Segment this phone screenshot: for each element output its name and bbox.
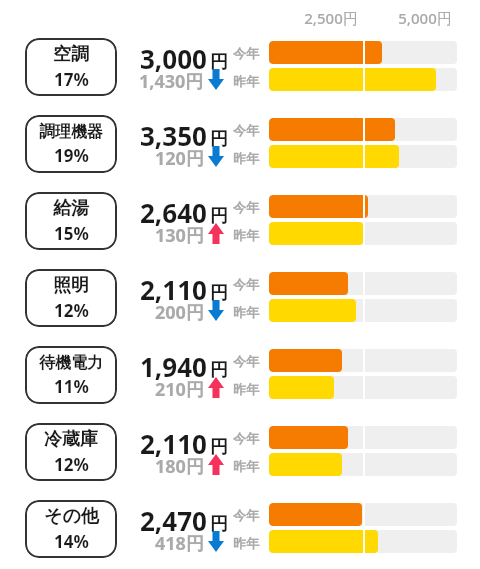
staticText: 今年: [233, 507, 259, 523]
staticText: 昨年: [233, 73, 259, 89]
button[interactable]: 給湯: [25, 192, 117, 250]
staticText: 2,640: [140, 195, 207, 230]
staticText: 1,940: [140, 349, 207, 384]
staticText: 円: [210, 513, 228, 536]
other: 増加: [208, 377, 224, 398]
staticText: 円: [210, 436, 228, 459]
staticText: 2,110: [140, 426, 207, 461]
staticText: 5,000円: [384, 8, 466, 28]
staticText: 19%: [54, 144, 89, 167]
staticText: 200円: [155, 300, 204, 325]
staticText: 180円: [155, 454, 204, 479]
staticText: 12%: [54, 299, 89, 322]
staticText: 120円: [155, 146, 204, 171]
staticText: 円: [210, 128, 228, 151]
staticText: 昨年: [233, 381, 259, 397]
button[interactable]: 調理機器: [25, 115, 117, 173]
staticText: 1,430円: [139, 69, 204, 94]
staticText: 14%: [54, 530, 89, 553]
staticText: 冷蔵庫: [44, 428, 98, 451]
other: 減少: [208, 69, 224, 90]
staticText: 待機電力: [39, 353, 103, 373]
other: 減少: [208, 146, 224, 167]
other: 減少: [208, 300, 224, 321]
staticText: 2,500円: [290, 8, 372, 28]
staticText: 円: [210, 205, 228, 228]
staticText: 昨年: [233, 535, 259, 551]
staticText: 今年: [233, 122, 259, 138]
staticText: 今年: [233, 353, 259, 369]
staticText: 3,000: [140, 41, 207, 76]
staticText: 2,470: [140, 503, 207, 538]
staticText: 昨年: [233, 150, 259, 166]
staticText: 12%: [54, 453, 89, 476]
staticText: 17%: [54, 68, 89, 91]
button[interactable]: 待機電力: [25, 346, 117, 404]
staticText: 3,350: [140, 118, 207, 153]
other: 増加: [208, 454, 224, 475]
staticText: 昨年: [233, 458, 259, 474]
staticText: 照明: [53, 274, 89, 297]
staticText: その他: [44, 505, 99, 528]
staticText: 今年: [233, 430, 259, 446]
button[interactable]: その他: [25, 500, 117, 558]
staticText: 今年: [233, 276, 259, 292]
staticText: 今年: [233, 199, 259, 215]
staticText: 210円: [155, 377, 204, 402]
staticText: 円: [210, 359, 228, 382]
staticText: 調理機器: [39, 122, 103, 142]
staticText: 空調: [53, 43, 89, 66]
staticText: 昨年: [233, 304, 259, 320]
staticText: 11%: [54, 375, 89, 398]
staticText: 円: [210, 282, 228, 305]
staticText: 今年: [233, 45, 259, 61]
other: 減少: [208, 531, 224, 552]
other: 増加: [208, 223, 224, 244]
staticText: 円: [210, 51, 228, 74]
button[interactable]: 照明: [25, 269, 117, 327]
staticText: 15%: [54, 222, 89, 245]
button[interactable]: 冷蔵庫: [25, 423, 117, 481]
staticText: 給湯: [53, 197, 89, 220]
staticText: 昨年: [233, 227, 259, 243]
staticText: 418円: [155, 531, 204, 556]
button[interactable]: 空調: [25, 38, 117, 96]
staticText: 130円: [155, 223, 204, 248]
staticText: 2,110: [140, 272, 207, 307]
